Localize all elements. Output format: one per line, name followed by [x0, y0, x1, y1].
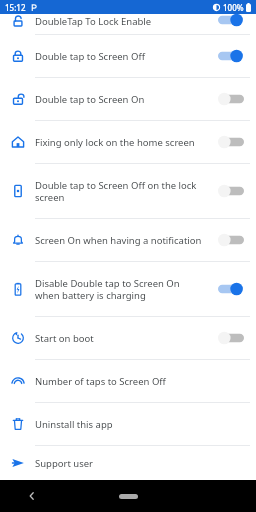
staticText: Uninstall this app	[35, 418, 202, 431]
button[interactable]: Support user	[0, 446, 256, 480]
button[interactable]: Screen On when having a notification	[0, 219, 256, 261]
staticText: DoubleTap To Lock Enable	[35, 15, 202, 28]
staticText: Screen On when having a notification	[35, 234, 202, 247]
button[interactable]: Double tap to Screen Off on the lock scr…	[0, 164, 256, 218]
other: Enabled	[218, 13, 244, 27]
button[interactable]: Fixing only lock on the home screen	[0, 121, 256, 163]
staticText: Support user	[35, 457, 202, 470]
button[interactable]: Home	[98, 480, 158, 512]
other: Disabled	[218, 92, 244, 106]
button[interactable]: Double tap to Screen Off	[0, 35, 256, 77]
staticText: Double tap to Screen Off	[35, 50, 202, 63]
staticText: Start on boot	[35, 332, 202, 345]
staticText: Disable Double tap to Screen On when bat…	[35, 277, 202, 302]
button[interactable]: DoubleTap To Lock Enable	[0, 14, 256, 34]
other: Disabled	[218, 233, 244, 247]
button[interactable]: Double tap to Screen On	[0, 78, 256, 120]
staticText: 15:12	[5, 2, 26, 13]
staticText: Double tap to Screen On	[35, 93, 202, 106]
button[interactable]: Back	[0, 480, 64, 512]
staticText: Number of taps to Screen Off	[35, 375, 202, 388]
staticText: 100%	[223, 2, 244, 13]
staticText: Fixing only lock on the home screen	[35, 136, 202, 149]
button[interactable]: Number of taps to Screen Off	[0, 360, 256, 402]
other: Disabled	[218, 331, 244, 345]
other: Disabled	[218, 135, 244, 149]
button[interactable]: Uninstall this app	[0, 403, 256, 445]
other: Enabled	[218, 282, 244, 296]
button[interactable]: Disable Double tap to Screen On when bat…	[0, 262, 256, 316]
other: Disabled	[218, 184, 244, 198]
button[interactable]: Start on boot	[0, 317, 256, 359]
staticText: Double tap to Screen Off on the lock scr…	[35, 179, 202, 204]
other: Enabled	[218, 49, 244, 63]
